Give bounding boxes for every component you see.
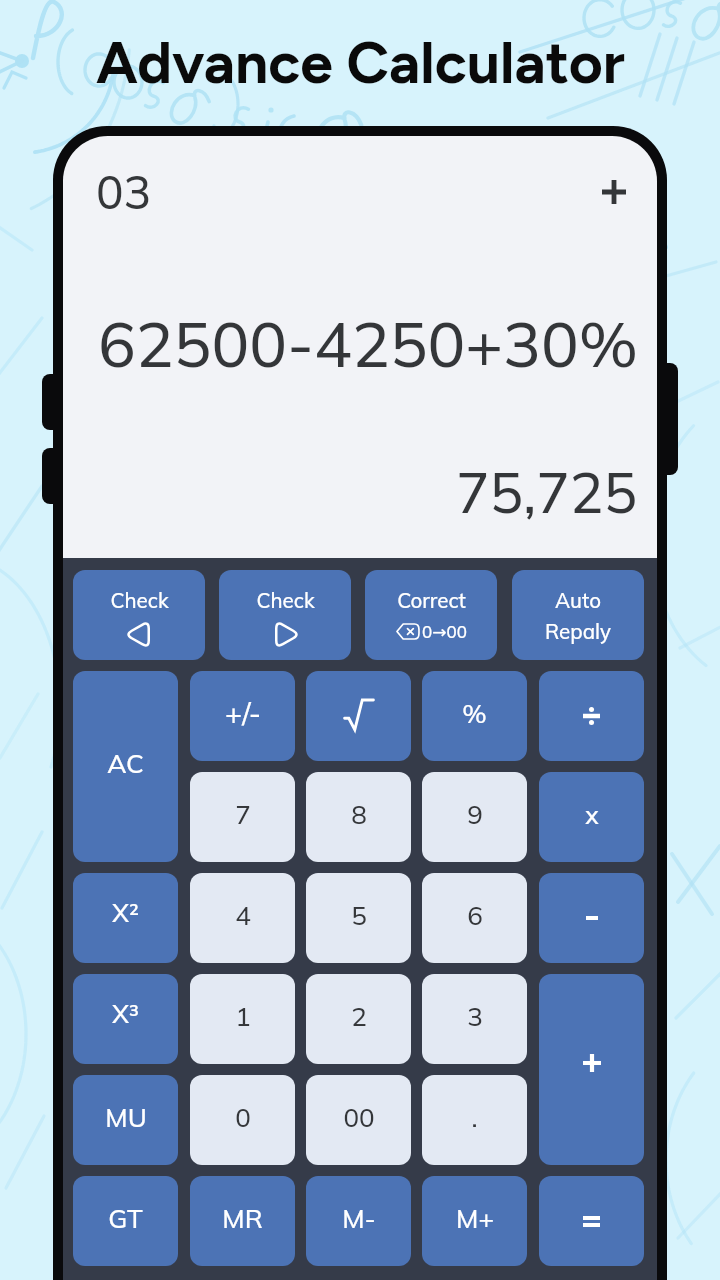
staticText: 6 — [467, 899, 483, 932]
button[interactable]: +/- — [190, 671, 295, 761]
button[interactable]: Divide — [539, 671, 644, 761]
button[interactable]: GT — [73, 1176, 178, 1266]
staticText: MU — [105, 1101, 147, 1134]
staticText: X³ — [112, 997, 139, 1030]
button[interactable]: 7 — [190, 772, 295, 862]
button[interactable]: 8 — [306, 772, 411, 862]
button[interactable]: 00 — [306, 1075, 411, 1165]
staticText: 75,725 — [456, 457, 637, 527]
button[interactable]: 5 — [306, 873, 411, 963]
staticText: X² — [112, 896, 139, 929]
staticText: 0→00 — [422, 621, 467, 642]
button[interactable]: Square root — [306, 671, 411, 761]
button[interactable]: Plus — [539, 974, 644, 1165]
button[interactable]: 9 — [422, 772, 527, 862]
staticText: Check — [256, 587, 315, 613]
button[interactable]: Check — [219, 570, 351, 660]
button[interactable]: MR — [190, 1176, 295, 1266]
staticText: 2 — [351, 1000, 367, 1033]
staticText: MR — [222, 1202, 263, 1235]
staticText: 0 — [235, 1101, 251, 1134]
staticText: 8 — [351, 798, 367, 831]
button[interactable]: M- — [306, 1176, 411, 1266]
button[interactable]: AC — [73, 671, 178, 862]
button[interactable]: Equals — [539, 1176, 644, 1266]
button[interactable]: M+ — [422, 1176, 527, 1266]
staticText: Check — [110, 587, 169, 613]
staticText: % — [462, 697, 487, 730]
staticText: Advance Calculator — [96, 27, 625, 97]
staticText: 3 — [467, 1000, 483, 1033]
button[interactable]: 1 — [190, 974, 295, 1064]
staticText: . — [471, 1101, 478, 1134]
staticText: AC — [107, 747, 144, 780]
button[interactable]: Add memory — [594, 172, 634, 212]
button[interactable]: . — [422, 1075, 527, 1165]
staticText: Auto — [555, 587, 601, 613]
button[interactable]: 3 — [422, 974, 527, 1064]
staticText: 7 — [235, 798, 251, 831]
button[interactable]: Check — [73, 570, 205, 660]
button[interactable]: Correct — [365, 570, 497, 660]
staticText: x — [585, 799, 599, 830]
button[interactable]: 4 — [190, 873, 295, 963]
button[interactable]: 2 — [306, 974, 411, 1064]
staticText: M- — [342, 1202, 376, 1235]
staticText: 1 — [235, 1000, 251, 1033]
button[interactable]: x — [539, 772, 644, 862]
button[interactable]: 6 — [422, 873, 527, 963]
button[interactable]: X³ — [73, 974, 178, 1064]
button[interactable]: 0 — [190, 1075, 295, 1165]
staticText: 5 — [351, 899, 367, 932]
button[interactable]: Minus — [539, 873, 644, 963]
button[interactable]: MU — [73, 1075, 178, 1165]
button[interactable]: X² — [73, 873, 178, 963]
staticText: 4 — [235, 899, 251, 932]
staticText: 62500-4250+30% — [98, 304, 638, 383]
staticText: 9 — [467, 798, 483, 831]
staticText: Correct — [397, 587, 466, 613]
staticText: GT — [108, 1202, 143, 1235]
staticText: +/- — [225, 695, 261, 731]
staticText: 00 — [343, 1101, 375, 1134]
staticText: M+ — [456, 1202, 494, 1235]
button[interactable]: % — [422, 671, 527, 761]
staticText: 03 — [96, 163, 152, 221]
button[interactable]: Auto — [512, 570, 644, 660]
staticText: Repaly — [545, 618, 611, 644]
